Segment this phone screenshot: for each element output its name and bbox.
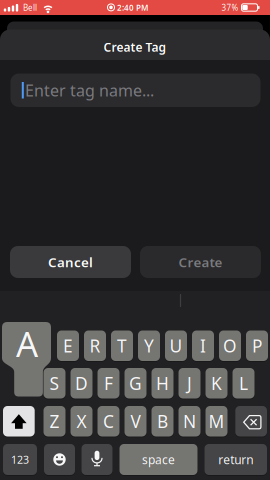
staticText: V: [130, 410, 140, 433]
button[interactable]: K: [205, 368, 227, 398]
button[interactable]: O: [219, 330, 241, 361]
button[interactable]: L: [232, 368, 254, 398]
button[interactable]: J: [178, 368, 200, 398]
button[interactable]: P: [246, 330, 268, 361]
staticText: Bell: [23, 2, 37, 13]
staticText: K: [211, 372, 222, 395]
button[interactable]: T: [111, 330, 133, 361]
staticText: J: [187, 372, 192, 395]
button[interactable]: A: [2, 322, 51, 396]
staticText: F: [104, 372, 113, 395]
button[interactable]: B: [151, 406, 173, 436]
staticText: Create Tag: [103, 39, 166, 55]
button[interactable]: I: [192, 330, 214, 361]
button[interactable]: G: [124, 368, 146, 398]
staticText: P: [252, 334, 262, 357]
button[interactable]: H: [151, 368, 173, 398]
staticText: G: [129, 372, 142, 395]
button[interactable]: X: [70, 406, 92, 436]
button[interactable]: Enter tag name...: [10, 73, 260, 107]
button[interactable]: Z: [43, 406, 65, 436]
button[interactable]: N: [178, 406, 200, 436]
staticText: U: [169, 334, 182, 357]
staticText: M: [208, 410, 224, 433]
button[interactable]: F: [97, 368, 119, 398]
button[interactable]: V: [124, 406, 146, 436]
staticText: C: [103, 410, 114, 433]
staticText: Y: [144, 334, 154, 357]
button[interactable]: space: [119, 444, 197, 475]
button[interactable]: M: [205, 406, 227, 436]
staticText: Enter tag name...: [25, 80, 154, 101]
button[interactable]: Dictation: [81, 444, 112, 475]
staticText: 123: [11, 452, 29, 467]
button[interactable]: Create: [140, 246, 261, 278]
staticText: S: [49, 372, 59, 395]
button[interactable]: Y: [138, 330, 160, 361]
staticText: E: [63, 334, 73, 357]
staticText: 37%: [221, 2, 238, 13]
button[interactable]: return: [204, 444, 267, 475]
button[interactable]: C: [97, 406, 119, 436]
staticText: Create: [178, 253, 222, 271]
button[interactable]: U: [165, 330, 187, 361]
staticText: L: [239, 372, 248, 395]
button[interactable]: S: [43, 368, 65, 398]
staticText: A: [16, 320, 38, 366]
staticText: T: [117, 334, 127, 357]
button[interactable]: 123: [3, 444, 37, 475]
button[interactable]: Cancel: [10, 246, 131, 278]
button[interactable]: Delete: [235, 406, 267, 436]
button[interactable]: D: [70, 368, 92, 398]
staticText: D: [75, 372, 88, 395]
staticText: return: [218, 451, 253, 467]
button[interactable]: R: [84, 330, 106, 361]
staticText: O: [223, 334, 237, 357]
staticText: space: [142, 451, 175, 467]
staticText: R: [89, 334, 100, 357]
button[interactable]: Emoji: [44, 444, 75, 475]
staticText: X: [76, 410, 86, 433]
staticText: N: [183, 410, 196, 433]
staticText: 2:40 PM: [117, 2, 148, 13]
staticText: B: [157, 410, 168, 433]
button[interactable]: Shift: [3, 406, 35, 436]
staticText: H: [156, 372, 169, 395]
button[interactable]: E: [57, 330, 79, 361]
staticText: Z: [49, 410, 59, 433]
staticText: I: [200, 334, 206, 357]
staticText: Cancel: [48, 253, 93, 271]
